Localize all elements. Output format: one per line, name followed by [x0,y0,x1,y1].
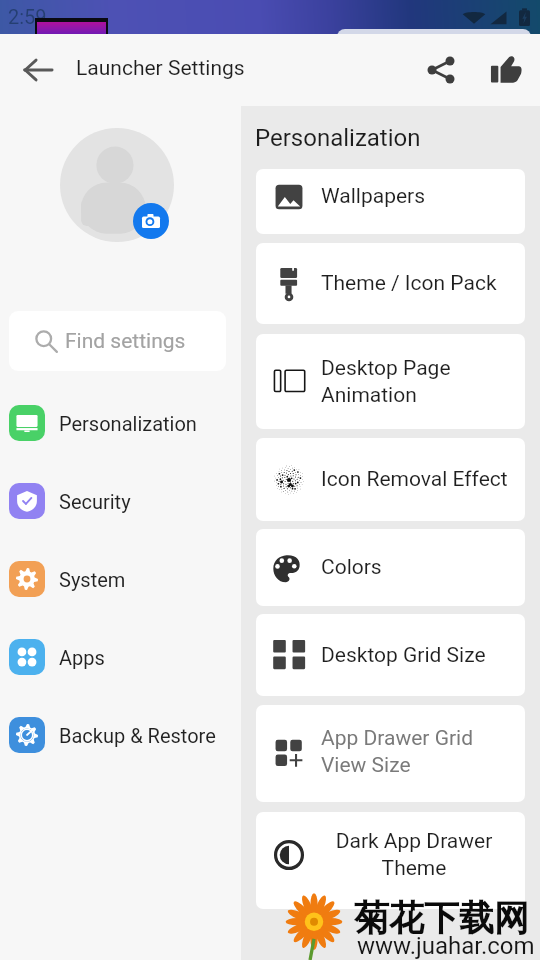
staticText: Find settings [65,329,186,354]
staticText: Wallpapers [321,184,426,209]
staticText: App Drawer Grid View Size [321,726,474,777]
button[interactable]: Backup & Restore [0,704,241,766]
button[interactable]: System [0,548,241,610]
staticText: Backup & Restore [59,724,216,747]
button[interactable]: Apps [0,626,241,688]
staticText: Apps [59,646,105,669]
staticText: www.juahar.com [357,932,535,960]
staticText: Personalization [255,124,421,152]
staticText: Dark App Drawer Theme [321,829,507,880]
button[interactable]: Share [417,46,465,94]
button[interactable]: Theme / Icon Pack [256,243,525,324]
button[interactable]: Desktop Page Animation [256,334,525,429]
button[interactable]: Desktop Grid Size [256,614,525,696]
button[interactable]: Change profile photo [133,203,169,239]
staticText: Colors [321,555,382,580]
button[interactable]: Back [14,46,62,94]
staticText: Personalization [59,412,197,435]
staticText: 菊花下载网 [354,896,529,940]
staticText: Icon Removal Effect [321,467,508,492]
button[interactable]: Wallpapers [256,169,525,234]
button[interactable]: Security [0,470,241,532]
staticText: 2:59 [8,5,47,28]
button[interactable]: Rate this app [482,46,530,94]
button[interactable]: Icon Removal Effect [256,438,525,521]
button[interactable]: App Drawer Grid View Size [256,705,525,802]
button[interactable]: Personalization [0,392,241,454]
staticText: Security [59,490,131,513]
staticText: Desktop Page Animation [321,356,451,407]
staticText: Theme / Icon Pack [321,271,497,296]
button[interactable]: Dark App Drawer Theme [256,812,525,909]
button[interactable]: Colors [256,529,525,606]
staticText: Desktop Grid Size [321,643,486,668]
button[interactable]: Find settings [9,311,226,371]
staticText: Launcher Settings [76,56,245,81]
staticText: System [59,568,126,591]
